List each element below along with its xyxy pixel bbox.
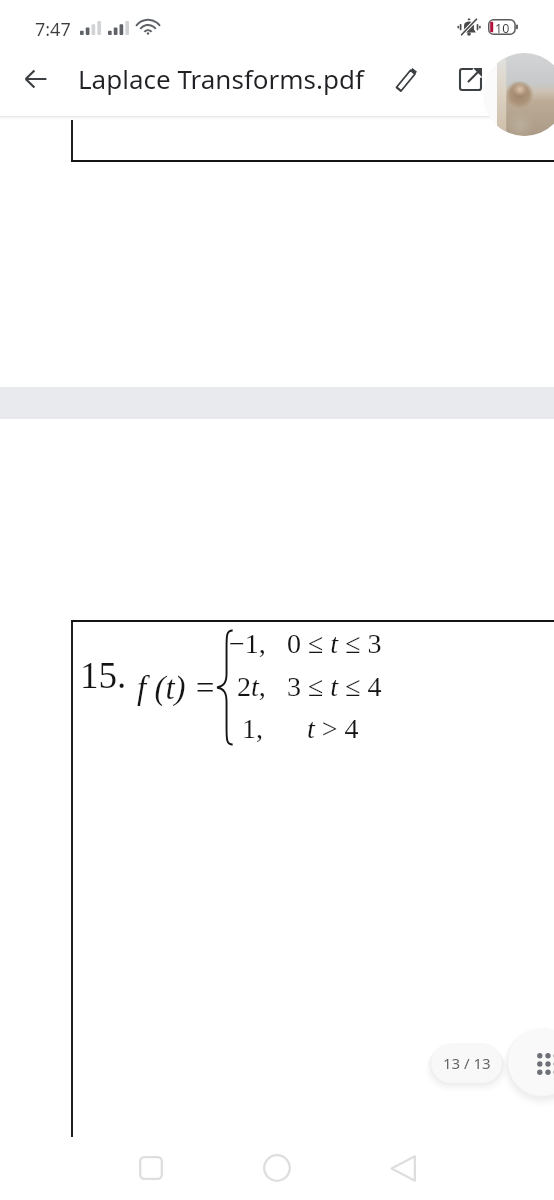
button[interactable]: Recent apps bbox=[130, 1147, 172, 1189]
staticText: Laplace Transforms.pdf bbox=[78, 61, 364, 96]
button[interactable]: 13 / 13 bbox=[431, 1043, 502, 1083]
staticText: 3 ≤ t ≤ 4 bbox=[287, 671, 382, 702]
staticText: 7:47 bbox=[35, 17, 71, 42]
staticText: 13 / 13 bbox=[443, 1053, 491, 1073]
staticText: f (t) = bbox=[137, 670, 217, 707]
staticText: t > 4 bbox=[307, 713, 359, 744]
button[interactable]: Edit bbox=[380, 53, 432, 105]
button[interactable]: Home bbox=[256, 1147, 298, 1189]
button[interactable]: Open in new window bbox=[444, 53, 496, 105]
staticText: 15. bbox=[80, 655, 127, 696]
button[interactable]: Back bbox=[382, 1147, 424, 1189]
button[interactable]: Back bbox=[8, 51, 64, 107]
staticText: 2t, bbox=[237, 671, 266, 702]
button[interactable]: More options bbox=[508, 1028, 554, 1096]
staticText: 10 bbox=[495, 20, 510, 37]
staticText: 0 ≤ t ≤ 3 bbox=[287, 628, 382, 659]
staticText: 1, bbox=[242, 713, 263, 744]
button[interactable]: Account bbox=[483, 53, 554, 136]
staticText: −1, bbox=[229, 628, 266, 659]
